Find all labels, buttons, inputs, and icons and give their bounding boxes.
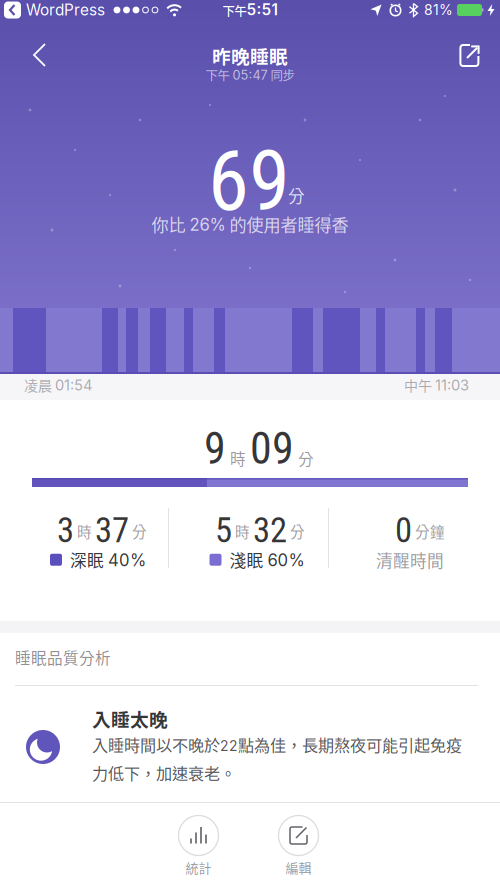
staticText: 32	[253, 510, 287, 551]
button[interactable]: Back to WordPress	[4, 1, 105, 19]
staticText: 9	[204, 423, 226, 475]
staticText: 分	[298, 447, 314, 470]
staticText: 中午 11:03	[404, 375, 469, 395]
staticText: 時	[77, 520, 92, 542]
staticText: 力低下，加速衰老。	[92, 761, 236, 784]
staticText: 凌晨 01:54	[24, 375, 92, 395]
button[interactable]: 統計	[178, 815, 219, 877]
staticText: 入睡時間以不晚於22點為佳，長期熬夜可能引起免疫	[92, 733, 462, 756]
staticText: 分	[290, 520, 305, 542]
staticText: 0	[395, 510, 412, 551]
staticText: 睡眠品質分析	[15, 646, 111, 669]
staticText: 淺眠 60%	[229, 548, 304, 571]
staticText: 下午5:51	[222, 1, 277, 19]
button[interactable]: Back	[20, 33, 64, 77]
staticText: 09	[250, 423, 294, 475]
staticText: 分	[132, 520, 147, 542]
staticText: 時	[230, 447, 246, 470]
staticText: 37	[95, 510, 129, 551]
staticText: 深眠 40%	[70, 548, 146, 571]
staticText: 3	[57, 510, 74, 551]
staticText: 5	[215, 510, 232, 551]
staticText: 下午 05:47 同步	[205, 66, 294, 84]
staticText: 統計	[185, 858, 211, 877]
staticText: 你比 26% 的使用者睡得香	[151, 212, 348, 236]
staticText: 69	[208, 133, 290, 230]
staticText: 編輯	[285, 858, 311, 877]
button[interactable]: Share	[447, 33, 491, 77]
staticText: 分	[288, 183, 305, 207]
staticText: 入睡太晚	[92, 705, 168, 732]
button[interactable]: 編輯	[278, 815, 319, 877]
staticText: 時	[235, 520, 250, 542]
staticText: 分鐘	[415, 520, 445, 542]
staticText: 清醒時間	[376, 548, 444, 572]
staticText: 81%	[424, 1, 453, 18]
staticText: 昨晚睡眠	[212, 42, 288, 69]
staticText: WordPress	[26, 1, 105, 19]
